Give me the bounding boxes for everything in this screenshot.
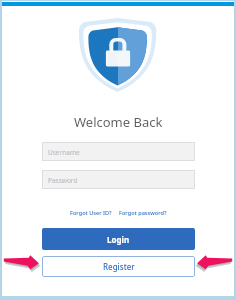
button[interactable]: Forgot password? [119,209,167,217]
staticText: Username [48,148,80,157]
staticText: Login [107,234,130,245]
staticText: Register [103,261,135,272]
staticText: Welcome Back [74,113,163,131]
button[interactable]: Login [42,228,195,250]
button[interactable]: Forgot User ID? [70,209,112,217]
button[interactable]: Password [42,170,195,189]
button[interactable]: Register [42,256,195,277]
staticText: Password [48,176,78,185]
button[interactable]: Username [42,142,195,161]
